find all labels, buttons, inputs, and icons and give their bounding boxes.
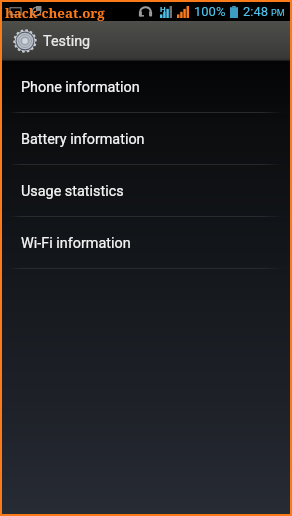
staticText: Usage statistics bbox=[21, 183, 124, 200]
staticText: hack-cheat.org bbox=[5, 4, 105, 22]
staticText: Testing bbox=[43, 33, 91, 50]
staticText: 100% bbox=[194, 4, 226, 19]
staticText: H bbox=[160, 5, 166, 14]
button[interactable]: Usage statistics bbox=[2, 165, 290, 217]
staticText: 2:48 bbox=[243, 4, 269, 19]
staticText: Wi-Fi information bbox=[21, 235, 131, 252]
staticText: Phone information bbox=[21, 79, 140, 96]
button[interactable]: Battery information bbox=[2, 113, 290, 165]
button[interactable]: Wi-Fi information bbox=[2, 217, 290, 269]
button[interactable]: Phone information bbox=[2, 61, 290, 113]
staticText: PM bbox=[271, 8, 285, 19]
other: App icon bbox=[13, 29, 37, 53]
staticText: Battery information bbox=[21, 131, 145, 148]
